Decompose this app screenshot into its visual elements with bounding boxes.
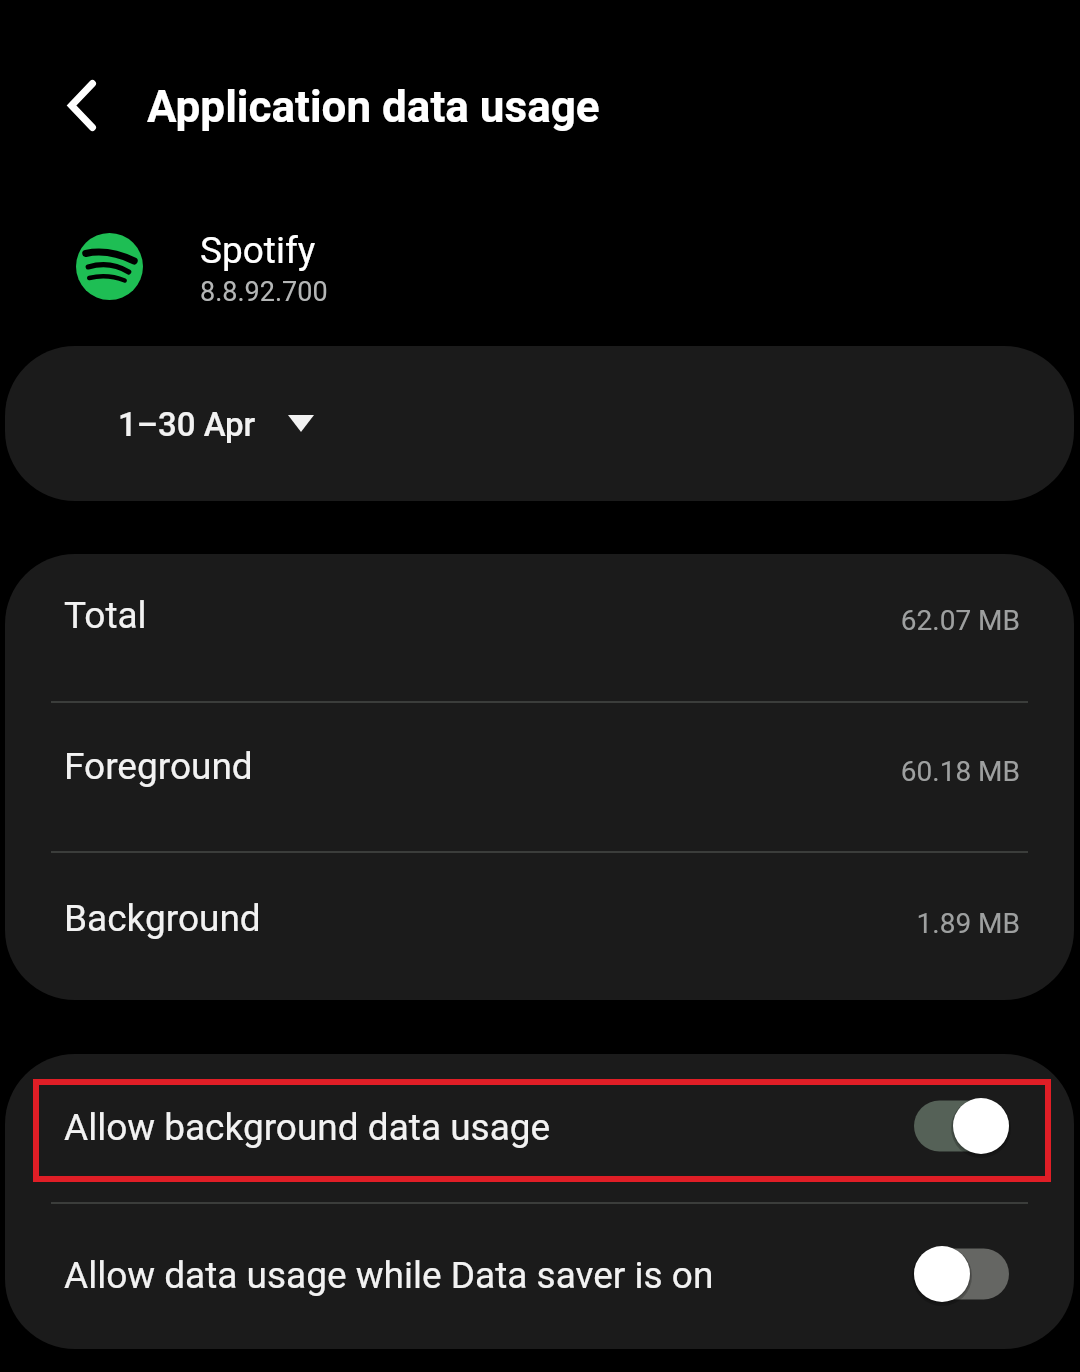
staticText: Application data usage [147, 81, 600, 133]
staticText: 8.8.92.700 [200, 276, 328, 308]
staticText: Foreground [64, 745, 253, 788]
staticText: Total [64, 594, 147, 637]
staticText: 60.18 MB [5, 755, 1020, 788]
button[interactable]: Background [5, 852, 1074, 1000]
button[interactable]: Allow background data usage [5, 1054, 1074, 1202]
button[interactable]: On [914, 1097, 1009, 1155]
staticText: Allow data usage while Data saver is on [64, 1254, 714, 1297]
button[interactable]: Total [5, 554, 1074, 701]
staticText: Allow background data usage [64, 1106, 551, 1149]
staticText: 1–30 Apr [118, 405, 256, 444]
staticText: Background [64, 897, 261, 940]
button[interactable]: Foreground [5, 702, 1074, 851]
button[interactable]: 1–30 Apr [5, 346, 1074, 501]
button[interactable]: Allow data usage while Data saver is on [5, 1203, 1074, 1349]
button[interactable]: Navigate up [34, 57, 130, 153]
staticText: 62.07 MB [5, 604, 1020, 637]
staticText: Spotify [200, 229, 316, 272]
button[interactable]: Off [914, 1245, 1009, 1303]
staticText: 1.89 MB [5, 907, 1020, 940]
